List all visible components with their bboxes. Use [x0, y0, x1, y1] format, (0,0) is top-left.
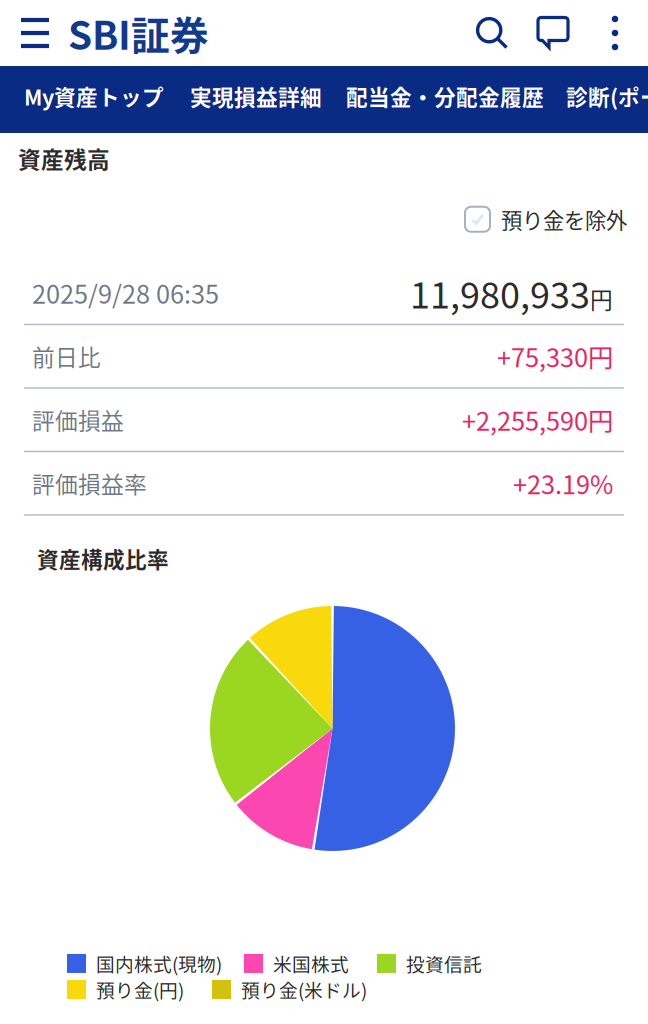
staticText: 配当金・分配金履歴: [346, 80, 544, 112]
button[interactable]: 実現損益詳細: [177, 66, 334, 133]
staticText: 米国株式: [273, 950, 349, 977]
button[interactable]: 診断(ポート: [555, 66, 648, 133]
button[interactable]: Menu: [0, 0, 68, 66]
staticText: 実現損益詳細: [190, 80, 322, 112]
staticText: 国内株式(現物): [96, 950, 222, 977]
button[interactable]: 預り金を除外: [465, 204, 627, 235]
staticText: 預り金(米ドル): [241, 976, 367, 1003]
staticText: 評価損益: [32, 403, 124, 436]
staticText: SBI証券: [68, 5, 209, 61]
staticText: 2025/9/28 06:35: [32, 274, 219, 311]
staticText: +2,255,590円: [462, 401, 613, 438]
button[interactable]: 配当金・分配金履歴: [334, 66, 555, 133]
staticText: 円: [590, 282, 613, 315]
staticText: 評価損益率: [32, 467, 147, 500]
staticText: 前日比: [32, 340, 101, 373]
staticText: My資産トップ: [24, 80, 164, 112]
button[interactable]: My資産トップ: [0, 66, 177, 133]
staticText: 預り金(円): [96, 976, 184, 1003]
staticText: 診断(ポート: [566, 80, 648, 112]
button[interactable]: Messages: [525, 0, 582, 66]
button[interactable]: More options: [582, 0, 648, 66]
staticText: +75,330円: [497, 338, 613, 375]
staticText: 資産構成比率: [37, 543, 169, 574]
staticText: 預り金を除外: [501, 204, 627, 235]
button[interactable]: Search: [459, 0, 525, 66]
staticText: +23.19%: [513, 465, 613, 502]
staticText: 資産残高: [18, 142, 110, 175]
staticText: 11,980,933: [410, 267, 590, 319]
staticText: 投資信託: [406, 950, 482, 977]
